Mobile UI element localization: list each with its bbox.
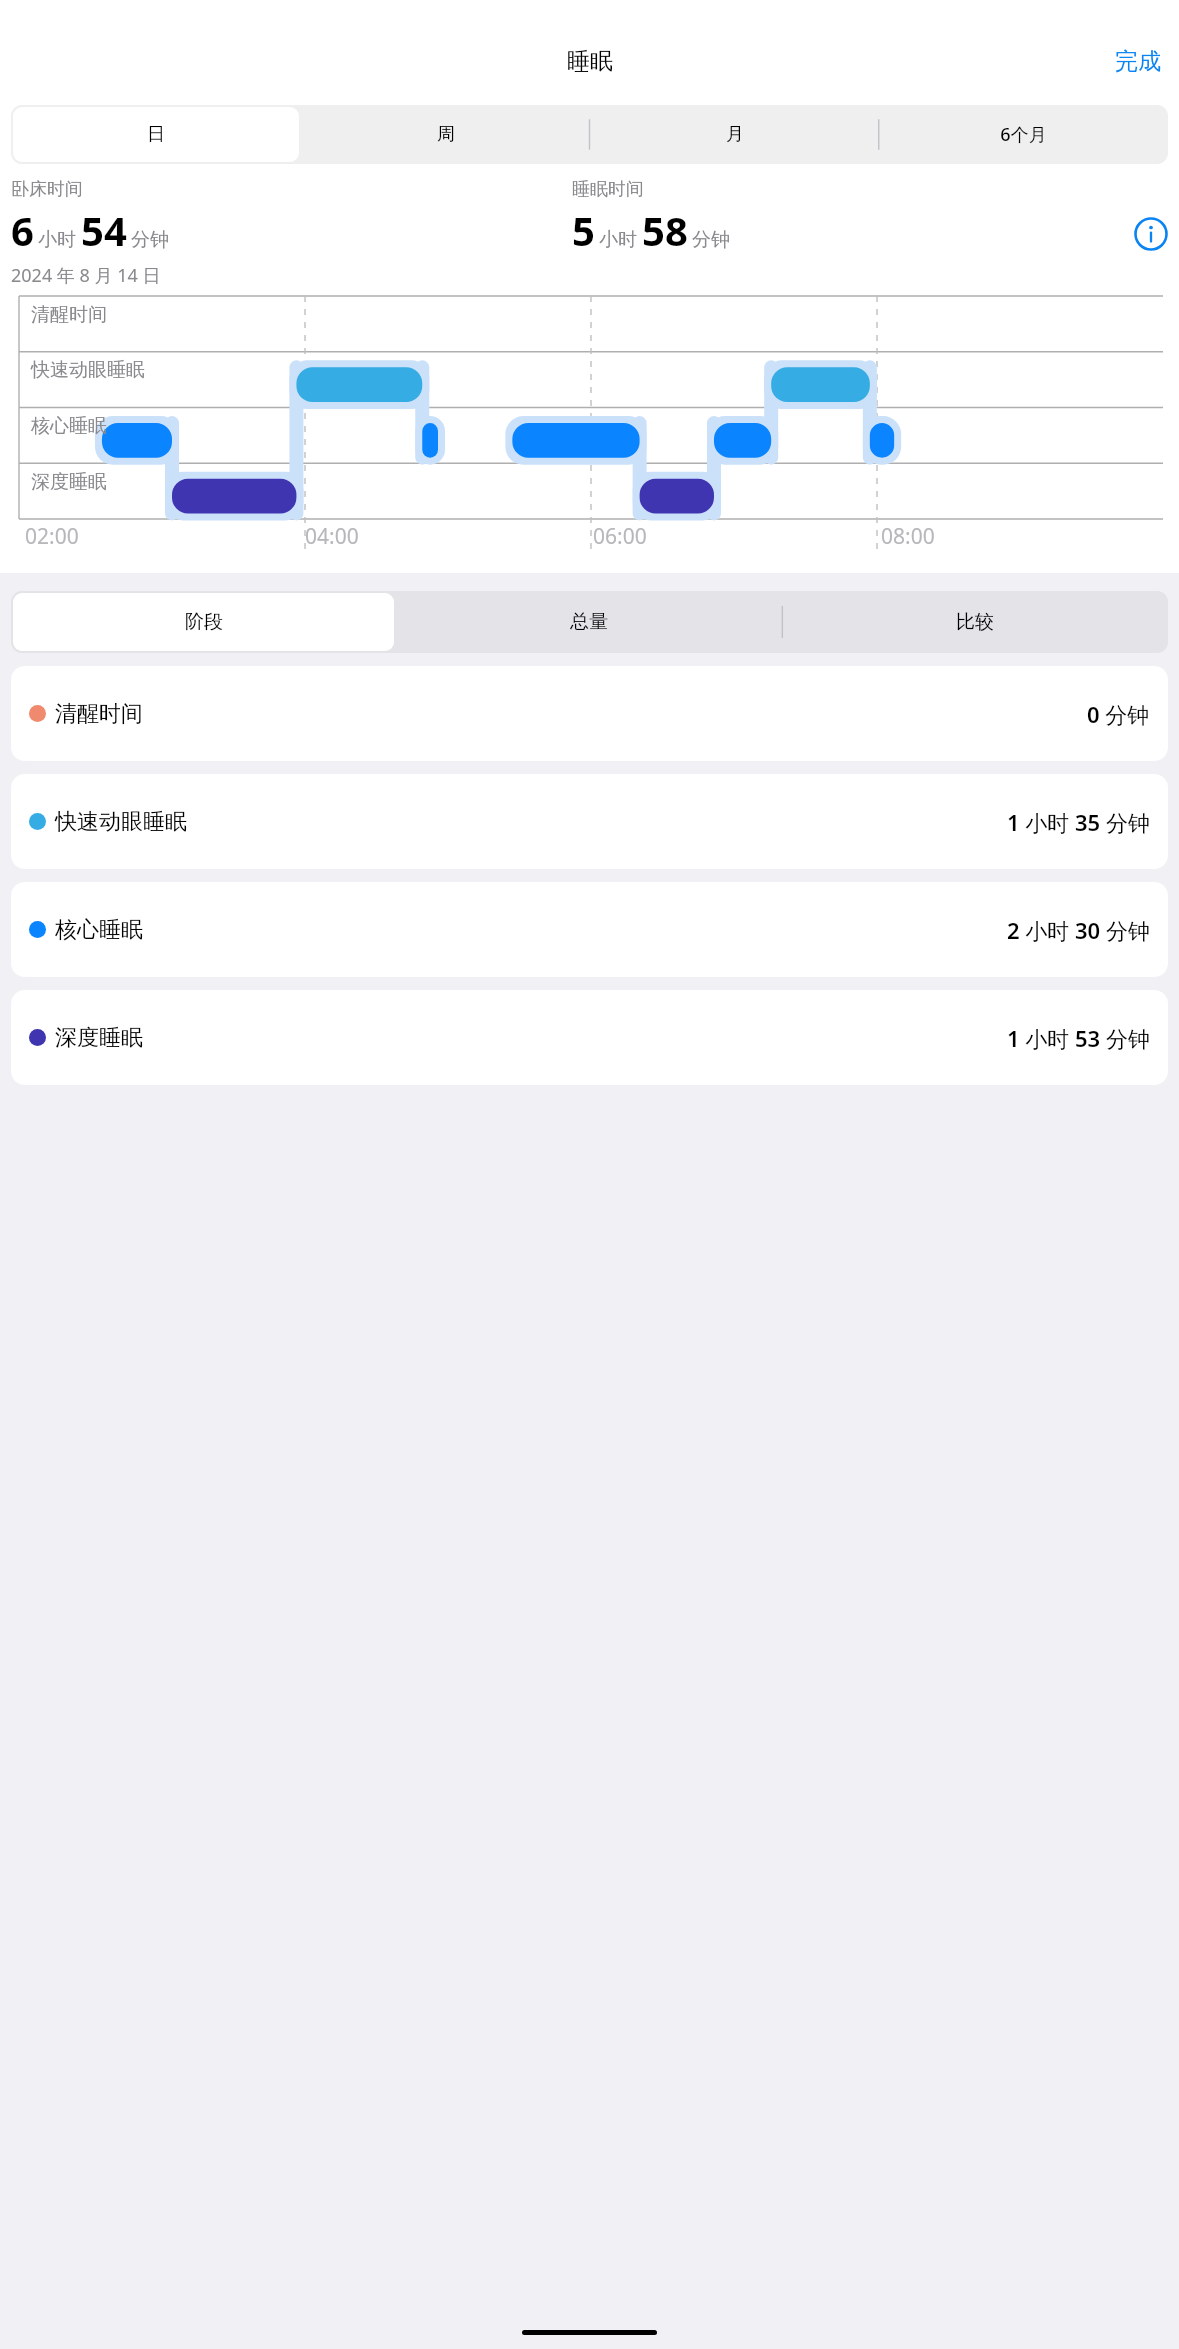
staticText: 比较 xyxy=(956,610,994,634)
staticText: 0 分钟 xyxy=(1087,699,1150,729)
button[interactable]: 比较 xyxy=(784,593,1166,651)
staticText: 清醒时间 xyxy=(31,303,107,327)
button[interactable]: 清醒时间 xyxy=(11,666,1168,761)
button[interactable]: 月 xyxy=(592,107,877,162)
staticText: 阶段 xyxy=(185,610,223,634)
staticText: 月 xyxy=(726,123,744,146)
button[interactable]: 日 xyxy=(13,107,299,162)
staticText: 5 xyxy=(572,203,595,257)
button[interactable]: 周 xyxy=(303,107,588,162)
staticText: 周 xyxy=(437,123,455,146)
staticText: 小时 xyxy=(38,228,76,252)
button[interactable]: 快速动眼睡眠 xyxy=(11,774,1168,869)
staticText: 核心睡眠 xyxy=(55,916,143,944)
staticText: 02:00 xyxy=(25,522,79,551)
button[interactable]: 总量 xyxy=(398,593,780,651)
staticText: 1 小时 35 分钟 xyxy=(1007,807,1150,837)
staticText: 深度睡眠 xyxy=(55,1024,143,1052)
staticText: 日 xyxy=(147,123,165,146)
staticText: 睡眠时间 xyxy=(572,178,644,201)
staticText: 清醒时间 xyxy=(55,700,143,728)
staticText: 深度睡眠 xyxy=(31,470,107,494)
staticText: 1 小时 53 分钟 xyxy=(1007,1023,1150,1053)
staticText: 58 xyxy=(642,203,688,257)
staticText: 卧床时间 xyxy=(11,178,83,201)
staticText: 快速动眼睡眠 xyxy=(31,358,145,382)
button[interactable]: 深度睡眠 xyxy=(11,990,1168,1085)
staticText: 06:00 xyxy=(593,522,647,551)
staticText: 6个月 xyxy=(1000,122,1047,147)
button[interactable]: 6个月 xyxy=(881,107,1166,162)
staticText: 6 xyxy=(11,203,34,257)
button[interactable]: 阶段 xyxy=(13,593,394,651)
staticText: 08:00 xyxy=(881,522,935,551)
staticText: 小时 xyxy=(599,228,637,252)
staticText: 分钟 xyxy=(131,228,169,252)
staticText: 快速动眼睡眠 xyxy=(55,808,187,836)
staticText: 睡眠 xyxy=(567,47,613,76)
button[interactable]: 完成 xyxy=(1111,43,1165,80)
staticText: 分钟 xyxy=(692,228,730,252)
button[interactable]: 核心睡眠 xyxy=(11,882,1168,977)
staticText: 54 xyxy=(81,203,127,257)
button[interactable]: 信息 xyxy=(1134,217,1168,251)
staticText: 完成 xyxy=(1115,47,1161,76)
staticText: 04:00 xyxy=(305,522,359,551)
staticText: 核心睡眠 xyxy=(31,414,107,438)
staticText: 总量 xyxy=(570,610,608,634)
staticText: 2 小时 30 分钟 xyxy=(1007,915,1150,945)
staticText: 2024 年 8 月 14 日 xyxy=(11,263,161,288)
